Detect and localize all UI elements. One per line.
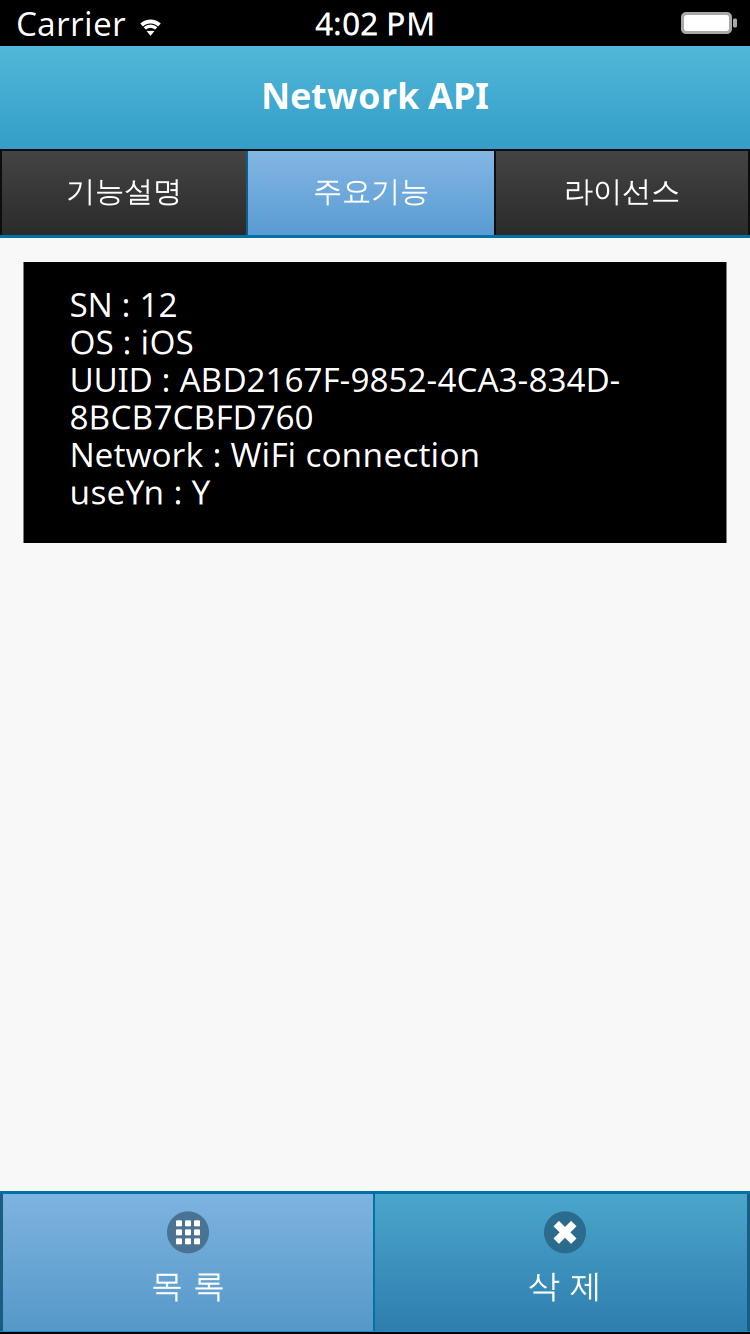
button[interactable]: 삭 제: [375, 1194, 747, 1331]
staticText: SN : 12: [69, 282, 177, 326]
staticText: Carrier: [16, 1, 126, 45]
staticText: UUID : ABD2167F-9852-4CA3-834D-: [69, 357, 620, 401]
staticText: OS : iOS: [69, 319, 193, 364]
button[interactable]: 라이선스: [496, 151, 748, 235]
staticText: 기능설명: [66, 173, 182, 209]
staticText: Network API: [261, 71, 489, 119]
button[interactable]: 기능설명: [2, 151, 246, 235]
staticText: useYn : Y: [69, 469, 210, 514]
staticText: 4:02 PM: [315, 2, 435, 44]
button[interactable]: 주요기능: [248, 151, 494, 235]
staticText: 8BCB7CBFD760: [69, 394, 313, 439]
staticText: 라이선스: [564, 173, 680, 209]
staticText: 주요기능: [313, 173, 429, 209]
staticText: 목 록: [151, 1266, 225, 1306]
staticText: 삭 제: [528, 1266, 602, 1306]
button[interactable]: 목 록: [3, 1194, 373, 1331]
staticText: Network : WiFi connection: [69, 432, 480, 476]
